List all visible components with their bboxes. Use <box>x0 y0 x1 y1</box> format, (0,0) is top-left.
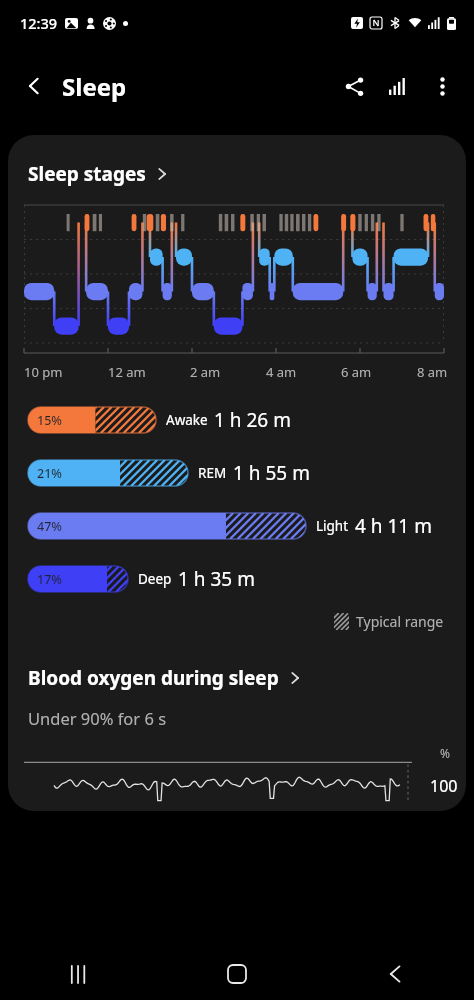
button[interactable]: 15% <box>8 407 466 433</box>
staticText: Under 90% for 6 s <box>28 707 167 729</box>
staticText: 4 am <box>266 363 297 381</box>
button[interactable]: Sleep stages <box>8 135 466 199</box>
staticText: Awake <box>166 411 208 429</box>
staticText: 2 am <box>190 363 221 381</box>
staticText: 1 h 55 m <box>233 460 310 486</box>
button[interactable]: 17% <box>8 566 466 592</box>
button[interactable]: Back <box>14 66 54 106</box>
staticText: Deep <box>138 570 172 588</box>
staticText: Sleep <box>62 70 127 103</box>
button[interactable]: Recent apps <box>0 948 158 1000</box>
button[interactable]: Statistics <box>376 64 420 108</box>
staticText: 12 am <box>108 363 146 381</box>
button[interactable]: Back <box>316 948 474 1000</box>
button[interactable]: 21% <box>8 460 466 486</box>
staticText: 8 am <box>417 363 448 381</box>
staticText: 12:39 <box>20 13 58 33</box>
staticText: Light <box>316 517 349 535</box>
staticText: 1 h 35 m <box>178 566 255 592</box>
staticText: 10 pm <box>24 363 63 381</box>
button[interactable]: 47% <box>8 513 466 539</box>
staticText: 21% <box>37 465 62 482</box>
staticText: % <box>440 745 450 761</box>
staticText: 47% <box>37 518 62 535</box>
staticText: 6 am <box>341 363 372 381</box>
staticText: Sleep stages <box>28 161 146 187</box>
staticText: REM <box>198 464 227 482</box>
staticText: 1 h 26 m <box>214 407 291 433</box>
button[interactable]: Blood oxygen during sleep <box>8 665 466 691</box>
staticText: 100 <box>430 775 458 797</box>
staticText: 4 h 11 m <box>355 513 432 539</box>
staticText: 17% <box>37 571 62 588</box>
button[interactable]: More options <box>420 64 464 108</box>
staticText: 15% <box>37 412 62 429</box>
staticText: Typical range <box>356 612 444 631</box>
button[interactable]: Home <box>158 948 316 1000</box>
button[interactable]: Share <box>332 64 376 108</box>
staticText: Blood oxygen during sleep <box>28 665 279 691</box>
